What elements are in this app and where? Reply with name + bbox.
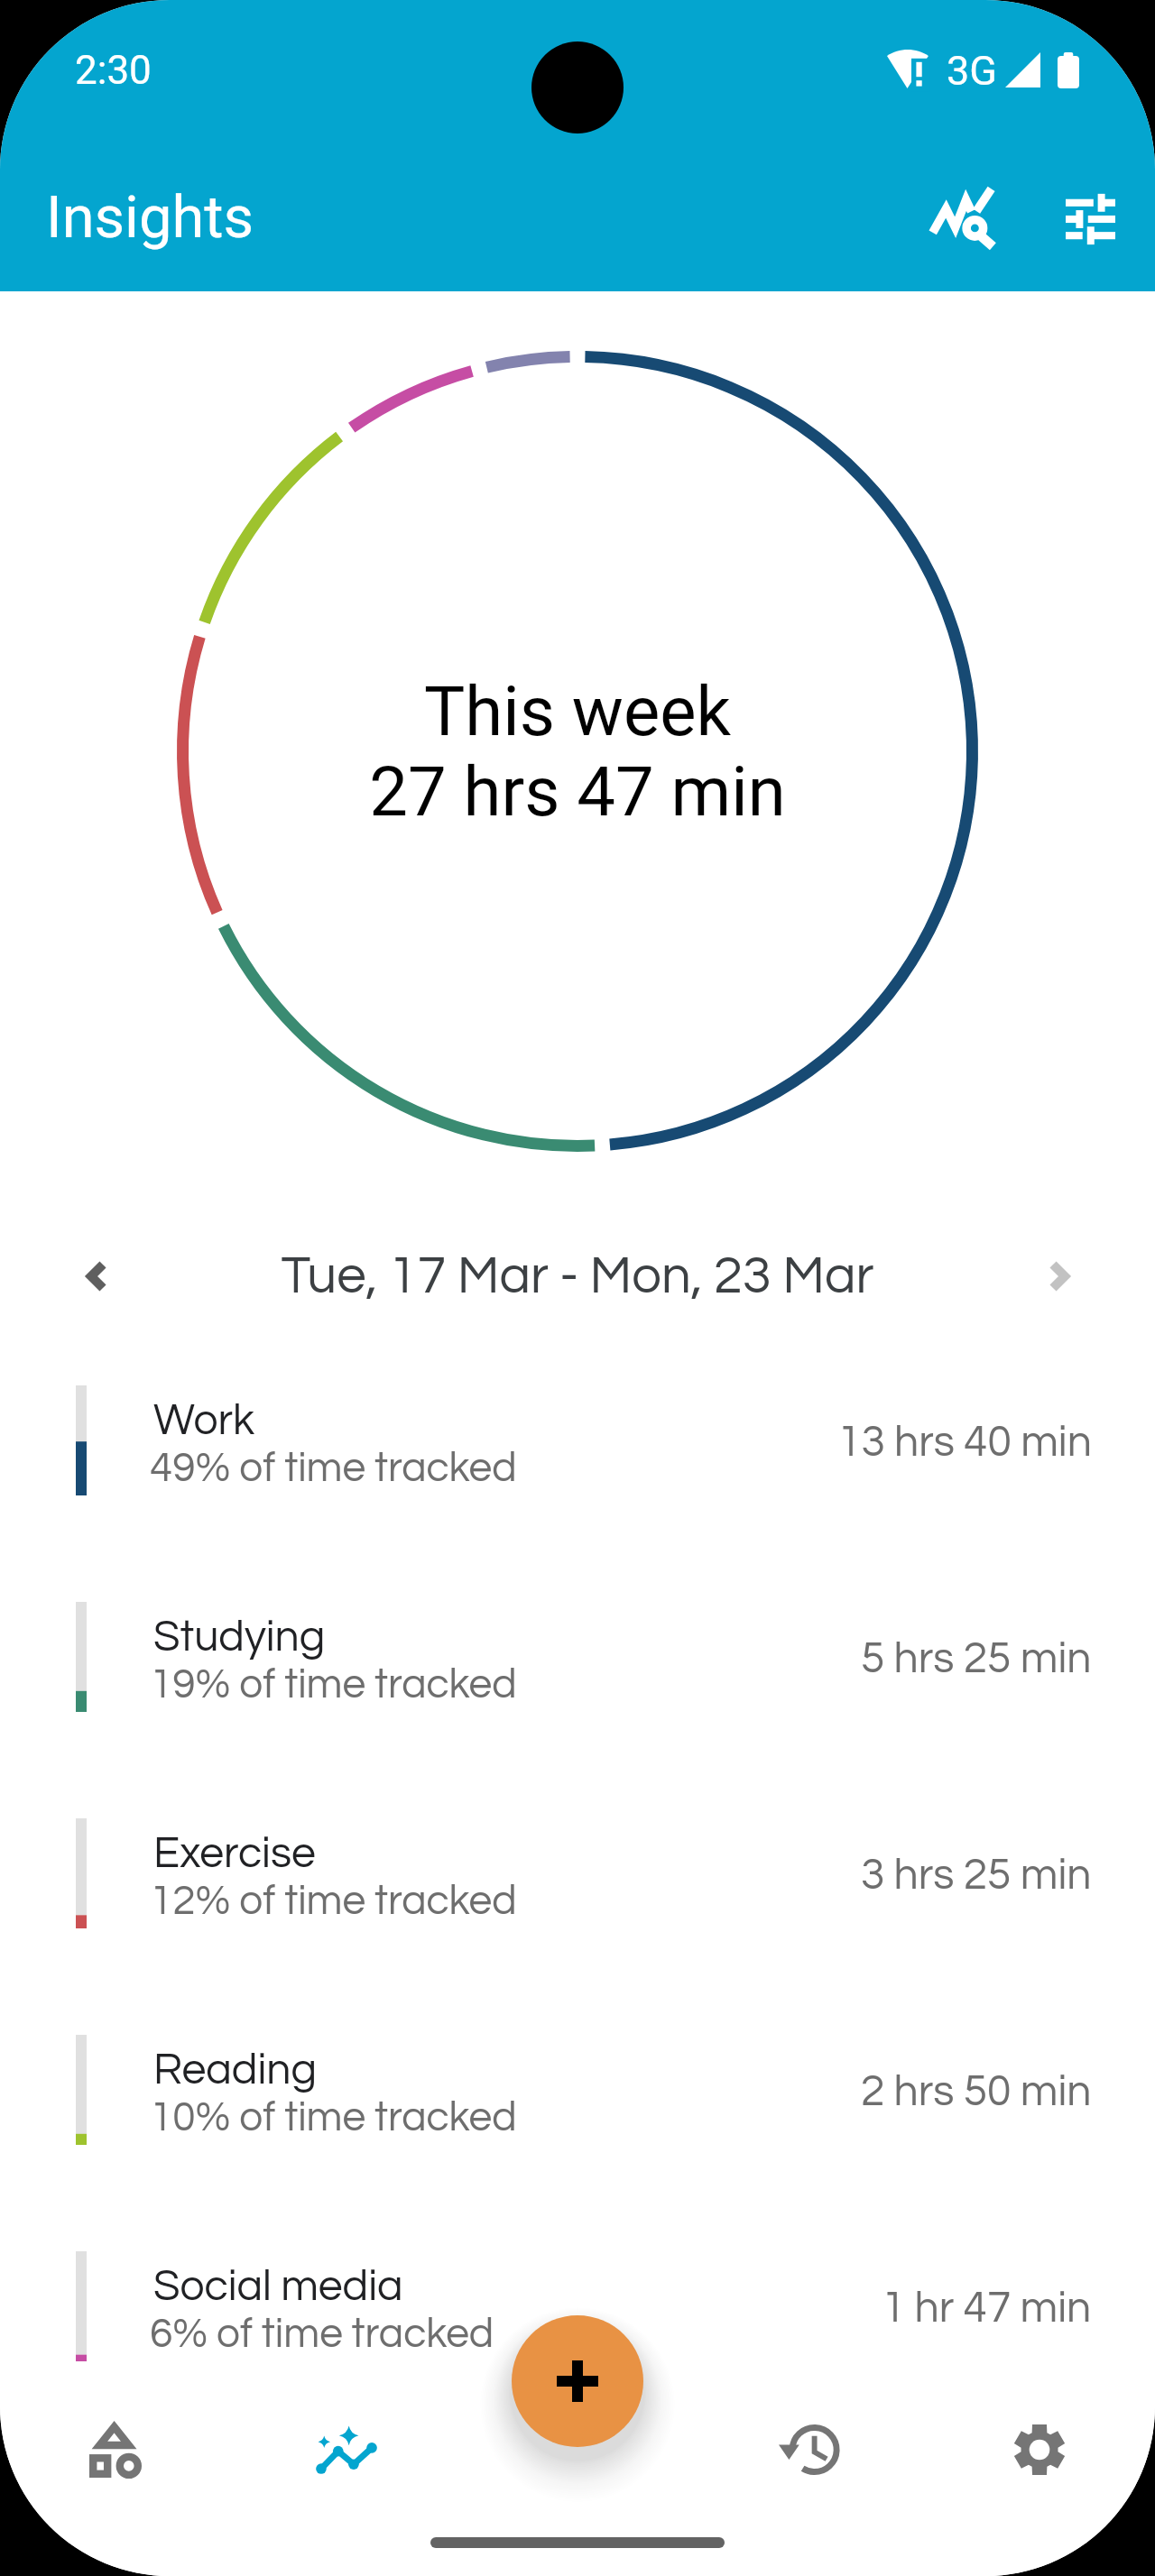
button[interactable]: Reading <box>0 2035 1155 2251</box>
button[interactable]: Previous week <box>58 1222 135 1330</box>
staticText: 27 hrs 47 min <box>369 751 786 832</box>
button[interactable]: Search stats <box>915 170 1010 265</box>
staticText: Tue, 17 Mar - Mon, 23 Mar <box>0 1249 1155 1303</box>
staticText: 5 hrs 25 min <box>861 1637 1092 1681</box>
button[interactable]: Categories <box>0 2385 231 2576</box>
staticText: Exercise <box>153 1832 316 1876</box>
button[interactable]: Work <box>0 1385 1155 1602</box>
staticText: Reading <box>153 2048 317 2093</box>
staticText: 12% of time tracked <box>150 1880 517 1922</box>
staticText: 13 hrs 40 min <box>837 1421 1092 1465</box>
button[interactable]: Exercise <box>0 1818 1155 2035</box>
staticText: Insights <box>46 183 254 252</box>
staticText: 2 hrs 50 min <box>861 2070 1092 2114</box>
staticText: 49% of time tracked <box>150 1447 517 1489</box>
staticText: 10% of time tracked <box>150 2096 517 2139</box>
button[interactable]: Social media <box>0 2251 1155 2468</box>
staticText: 1 hr 47 min <box>882 2286 1092 2331</box>
staticText: Studying <box>153 1615 326 1660</box>
button[interactable]: Insights <box>231 2385 462 2576</box>
button[interactable]: Next week <box>1020 1222 1097 1330</box>
staticText: 6% of time tracked <box>150 2313 494 2355</box>
staticText: 19% of time tracked <box>150 1663 517 1706</box>
button[interactable]: History <box>693 2385 924 2576</box>
button[interactable]: Settings <box>924 2385 1155 2576</box>
staticText: 3G <box>947 47 997 95</box>
staticText: Social media <box>153 2265 403 2309</box>
button[interactable]: Studying <box>0 1602 1155 1818</box>
staticText: Work <box>153 1399 255 1443</box>
staticText: This week <box>424 671 731 751</box>
staticText: 2:30 <box>75 47 152 94</box>
button[interactable]: Add entry <box>512 2315 643 2447</box>
button[interactable]: Filters <box>1043 171 1138 266</box>
staticText: 3 hrs 25 min <box>861 1854 1092 1898</box>
